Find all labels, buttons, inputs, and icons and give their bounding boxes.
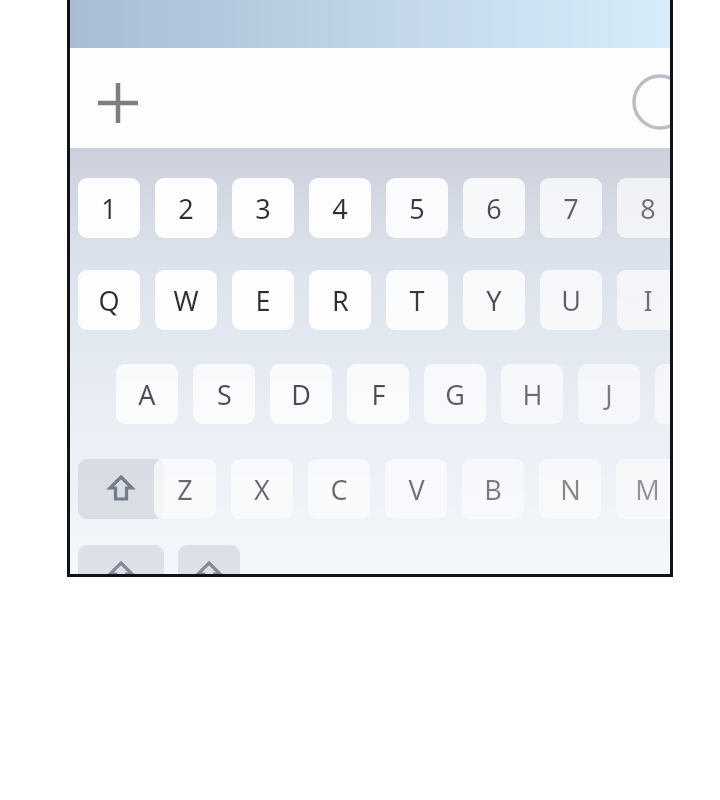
- staticText: 8: [640, 190, 656, 227]
- button[interactable]: 5: [386, 178, 448, 238]
- staticText: X: [254, 471, 270, 508]
- button[interactable]: Emoji: [178, 545, 240, 574]
- button[interactable]: Y: [463, 270, 525, 330]
- button[interactable]: 2: [155, 178, 217, 238]
- staticText: U: [561, 282, 581, 319]
- button[interactable]: B: [462, 459, 524, 519]
- staticText: M: [635, 471, 660, 508]
- staticText: 6: [486, 190, 502, 227]
- staticText: D: [291, 376, 311, 413]
- button[interactable]: G: [424, 364, 486, 424]
- staticText: 4: [332, 190, 348, 227]
- button[interactable]: S: [193, 364, 255, 424]
- button[interactable]: Symbols: [78, 545, 164, 574]
- staticText: B: [484, 471, 502, 508]
- button[interactable]: 4: [309, 178, 371, 238]
- button[interactable]: C: [308, 459, 370, 519]
- staticText: V: [408, 471, 425, 508]
- staticText: I: [643, 282, 653, 319]
- button[interactable]: N: [539, 459, 601, 519]
- button[interactable]: A: [116, 364, 178, 424]
- staticText: 7: [563, 190, 579, 227]
- button[interactable]: X: [231, 459, 293, 519]
- staticText: N: [560, 471, 581, 508]
- button[interactable]: T: [386, 270, 448, 330]
- staticText: 3: [255, 190, 271, 227]
- button[interactable]: Q: [78, 270, 140, 330]
- button[interactable]: 6: [463, 178, 525, 238]
- staticText: R: [332, 282, 349, 319]
- staticText: Q: [98, 282, 120, 319]
- staticText: A: [138, 376, 156, 413]
- staticText: H: [522, 376, 543, 413]
- button[interactable]: Shift: [78, 459, 164, 519]
- button[interactable]: Add: [90, 73, 146, 133]
- button[interactable]: U: [540, 270, 602, 330]
- staticText: T: [409, 282, 425, 319]
- button[interactable]: M: [616, 459, 670, 519]
- button[interactable]: J: [578, 364, 640, 424]
- staticText: 1: [101, 190, 117, 227]
- staticText: J: [605, 376, 613, 413]
- button[interactable]: Z: [154, 459, 216, 519]
- button[interactable]: 3: [232, 178, 294, 238]
- staticText: Y: [486, 282, 502, 319]
- button[interactable]: 8: [617, 178, 670, 238]
- staticText: 5: [409, 190, 425, 227]
- staticText: 2: [178, 190, 194, 227]
- button[interactable]: W: [155, 270, 217, 330]
- button[interactable]: E: [232, 270, 294, 330]
- button[interactable]: I: [617, 270, 670, 330]
- button[interactable]: D: [270, 364, 332, 424]
- staticText: C: [330, 471, 348, 508]
- staticText: G: [445, 376, 465, 413]
- staticText: E: [255, 282, 271, 319]
- button[interactable]: 1: [78, 178, 140, 238]
- button[interactable]: R: [309, 270, 371, 330]
- staticText: F: [371, 376, 386, 413]
- button[interactable]: 7: [540, 178, 602, 238]
- button[interactable]: F: [347, 364, 409, 424]
- staticText: W: [173, 282, 199, 319]
- staticText: Z: [177, 471, 193, 508]
- button[interactable]: H: [501, 364, 563, 424]
- button[interactable]: V: [385, 459, 447, 519]
- staticText: S: [217, 376, 232, 413]
